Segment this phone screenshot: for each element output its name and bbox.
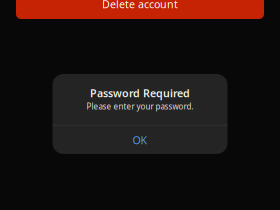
- button[interactable]: OK: [52, 126, 227, 154]
- staticText: OK: [132, 133, 147, 147]
- staticText: Delete account: [102, 0, 178, 11]
- button[interactable]: Delete account: [16, 0, 264, 19]
- staticText: Please enter your password.: [86, 101, 193, 112]
- staticText: Password Required: [90, 86, 190, 100]
